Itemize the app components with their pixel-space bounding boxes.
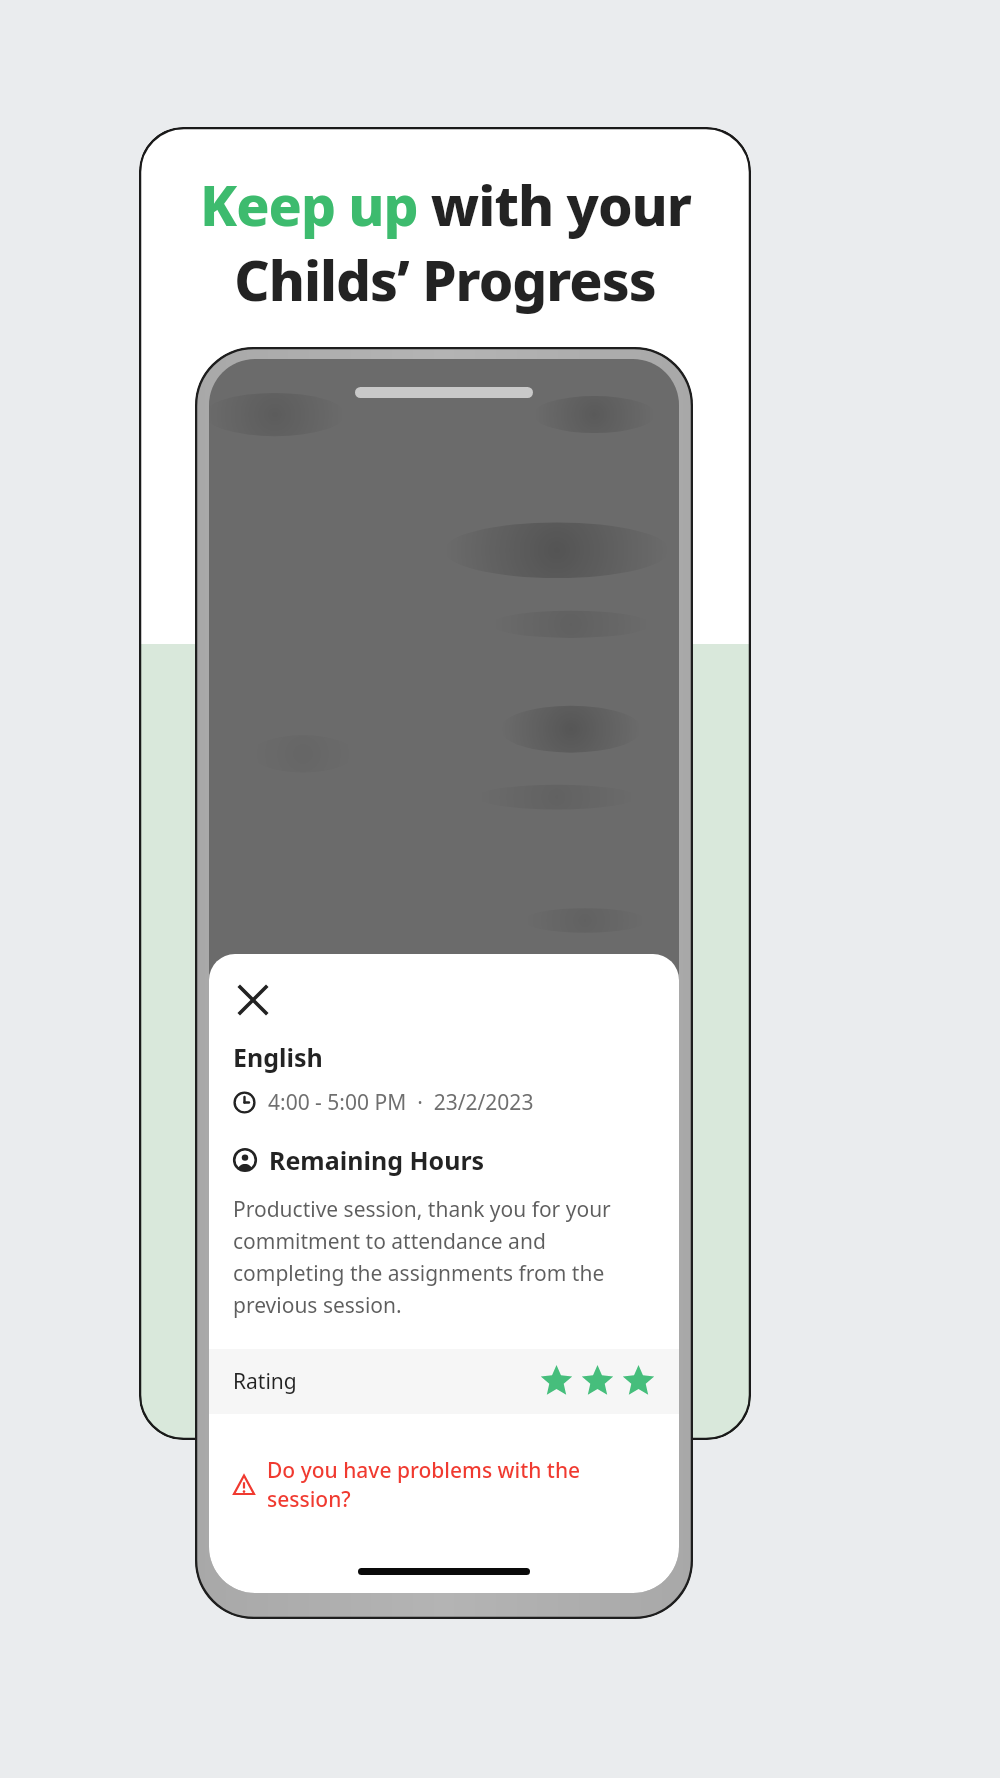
button[interactable]: Rating <box>209 1349 679 1414</box>
staticText: Rating <box>233 1367 297 1396</box>
staticText: Do you have problems with the session? <box>267 1456 655 1514</box>
button[interactable]: Close <box>229 976 277 1024</box>
staticText: Childs’ Progress <box>234 242 656 317</box>
staticText: Productive session, thank you for your c… <box>233 1195 657 1319</box>
staticText: English <box>233 1040 323 1074</box>
staticText: 4:00 - 5:00 PM · 23/2/2023 <box>268 1088 534 1117</box>
staticText: Remaining Hours <box>269 1143 485 1177</box>
staticText: Keep up with your <box>200 167 691 242</box>
button[interactable]: Do you have problems with the session? <box>209 1450 679 1520</box>
